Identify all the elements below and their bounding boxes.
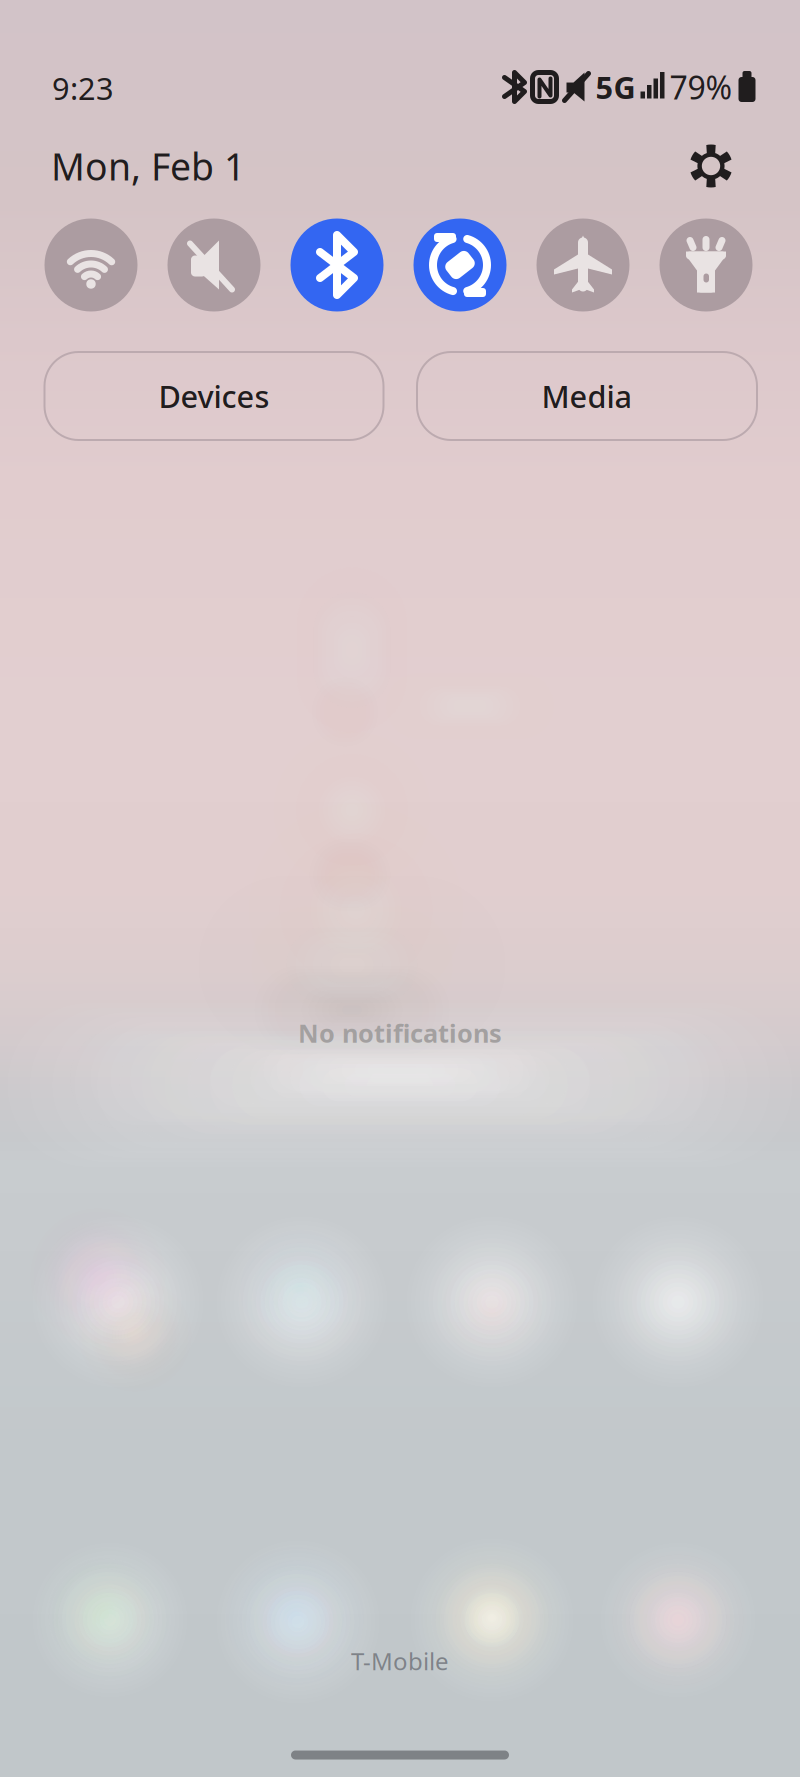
staticText: T-Mobile: [351, 1645, 449, 1677]
staticText: No notifications: [298, 1016, 502, 1050]
button[interactable]: Wi-Fi: [38, 212, 144, 318]
staticText: 79%: [669, 66, 732, 108]
button[interactable]: Flashlight: [653, 212, 759, 318]
staticText: 5G: [595, 67, 635, 107]
button[interactable]: Settings: [689, 144, 733, 188]
button[interactable]: Bluetooth: [284, 212, 390, 318]
staticText: Devices: [158, 376, 269, 416]
button[interactable]: Auto rotate: [407, 212, 513, 318]
button[interactable]: Media: [417, 352, 757, 440]
staticText: Media: [541, 376, 632, 416]
staticText: 9:23: [52, 68, 114, 108]
button[interactable]: Sound: [161, 212, 267, 318]
staticText: Mon, Feb 1: [51, 141, 245, 191]
button[interactable]: Devices: [44, 352, 383, 440]
button[interactable]: Airplane mode: [530, 212, 636, 318]
